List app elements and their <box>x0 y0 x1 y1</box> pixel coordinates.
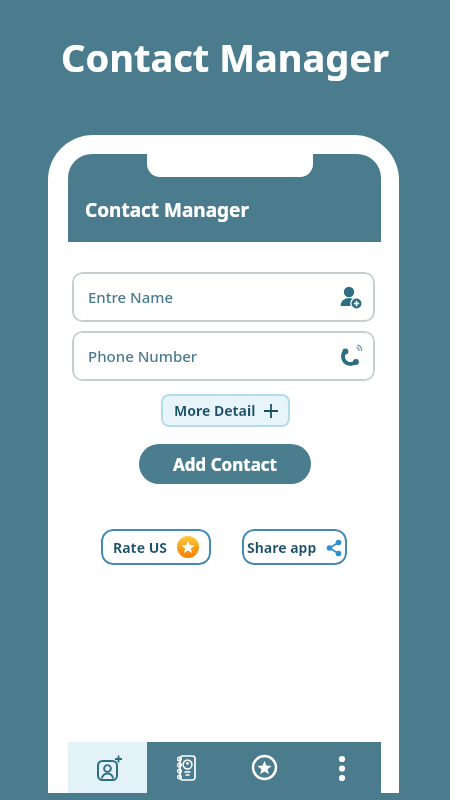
button[interactable] <box>225 742 303 793</box>
staticText: Share app <box>247 538 317 557</box>
staticText: Entre Name <box>88 287 174 307</box>
staticText: More Detail <box>174 401 256 420</box>
button[interactable]: Entre Name <box>72 272 375 322</box>
button[interactable]: Add Contact <box>139 444 311 484</box>
staticText: Add Contact <box>173 453 277 476</box>
button[interactable]: More Detail <box>161 394 290 427</box>
button[interactable]: Phone Number <box>72 331 375 381</box>
button[interactable] <box>147 742 225 793</box>
staticText: Contact Manager <box>61 31 389 83</box>
button[interactable] <box>303 742 381 793</box>
staticText: Contact Manager <box>85 197 249 223</box>
staticText: Rate US <box>113 538 167 557</box>
button[interactable]: Rate US <box>101 529 211 565</box>
staticText: Phone Number <box>88 346 198 366</box>
button[interactable]: Share app <box>242 529 347 565</box>
button[interactable] <box>68 742 147 793</box>
